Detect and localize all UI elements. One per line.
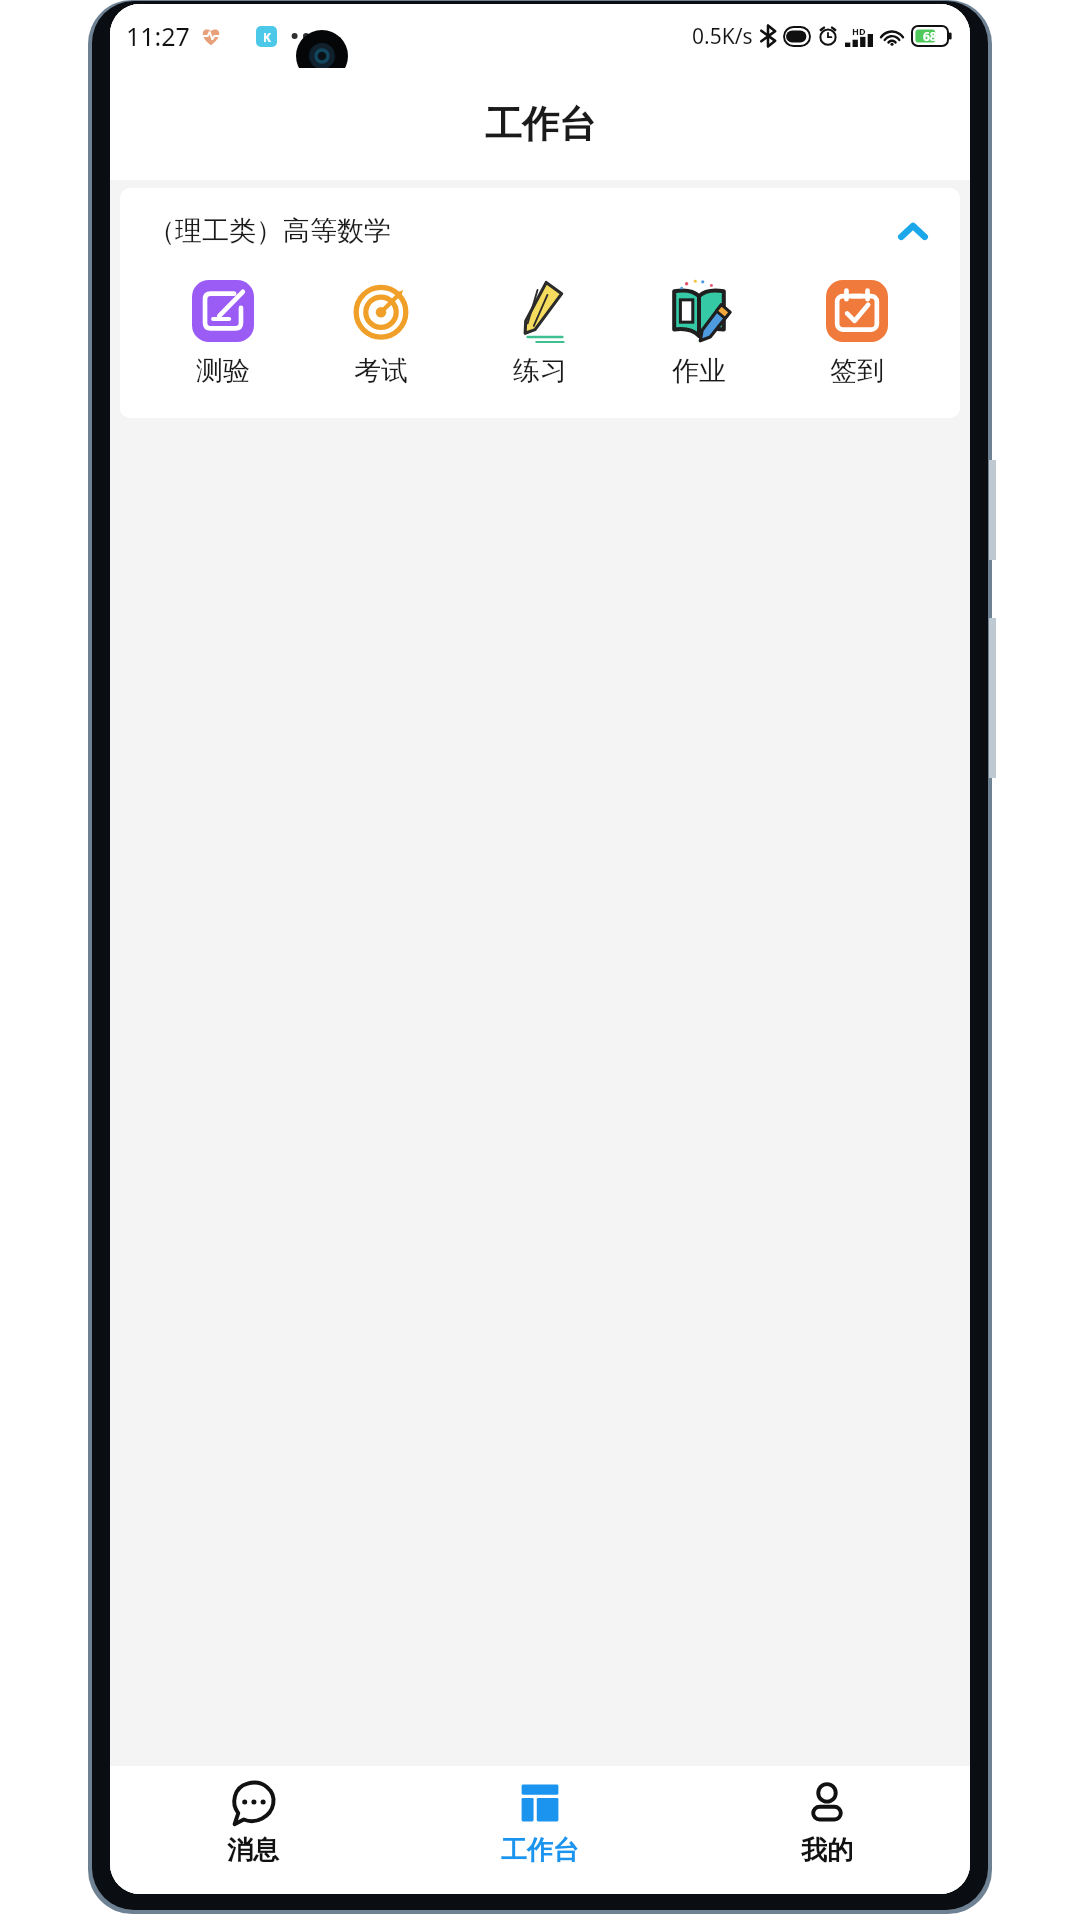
staticText: 消息 (227, 1834, 279, 1867)
staticText: 考试 (354, 354, 408, 388)
staticText: 测验 (196, 354, 250, 388)
button[interactable]: 工作台 (396, 1766, 683, 1894)
staticText: 作业 (672, 354, 726, 388)
button[interactable]: （理工类）高等数学 (120, 188, 960, 274)
button[interactable]: 作业 (643, 276, 755, 392)
button[interactable]: 消息 (110, 1766, 396, 1894)
button[interactable]: 考试 (325, 276, 437, 392)
staticText: 0.5K/s (692, 22, 753, 51)
staticText: 我的 (801, 1834, 853, 1867)
staticText: （理工类）高等数学 (148, 214, 391, 248)
staticText: HD (852, 25, 866, 37)
staticText: 68 (923, 28, 937, 44)
staticText: 11:27 (126, 19, 190, 53)
button[interactable]: 签到 (801, 276, 913, 392)
staticText: 练习 (513, 354, 567, 388)
button[interactable]: 我的 (683, 1766, 970, 1894)
staticText: 工作台 (501, 1834, 579, 1867)
button[interactable]: 测验 (167, 276, 279, 392)
button[interactable]: 练习 (484, 276, 596, 392)
staticText: 工作台 (485, 101, 596, 148)
staticText: 签到 (830, 354, 884, 388)
button[interactable]: Collapse (890, 208, 936, 254)
staticText: K (263, 29, 271, 45)
